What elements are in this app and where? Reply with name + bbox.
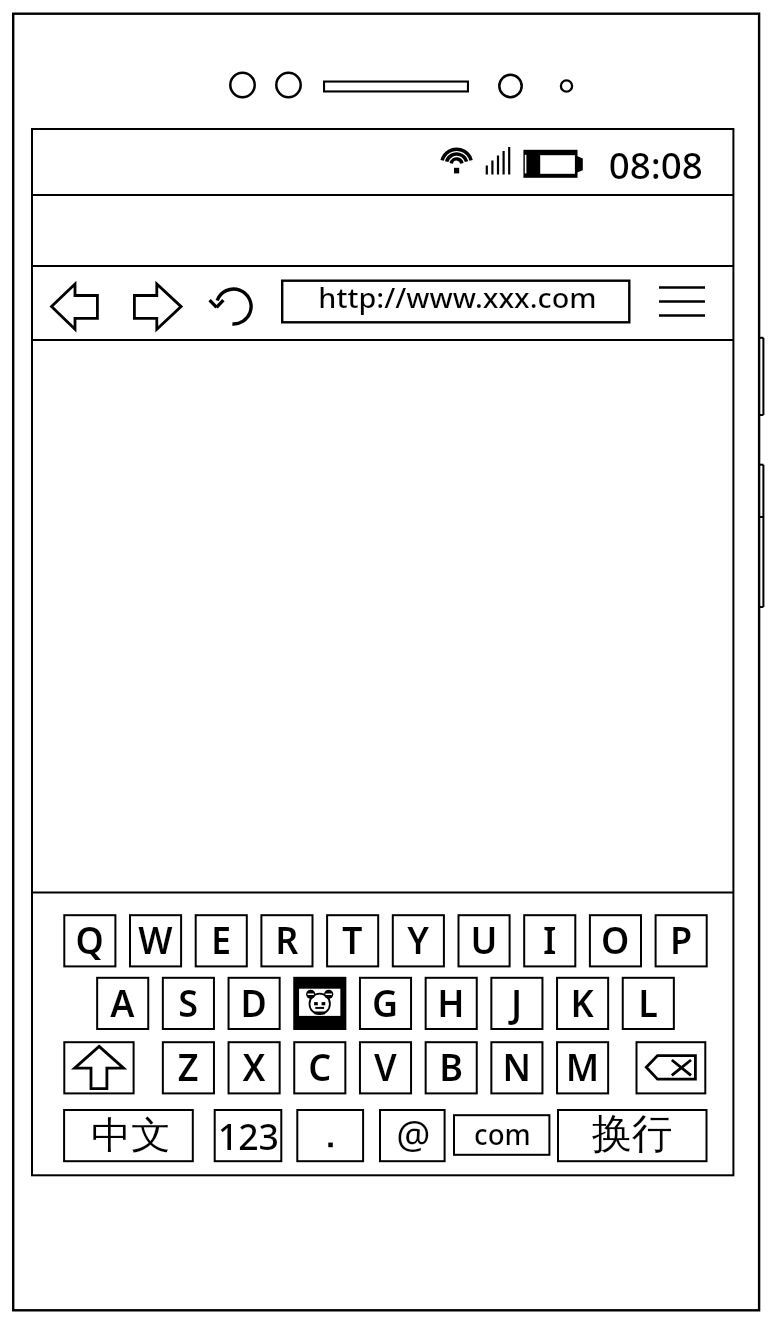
- button[interactable]: Forward: [124, 272, 196, 338]
- button[interactable]: I: [523, 914, 576, 967]
- button[interactable]: Address bar: [281, 280, 631, 324]
- button[interactable]: X: [228, 1041, 281, 1094]
- button[interactable]: T: [326, 914, 379, 967]
- button[interactable]: Q: [63, 914, 116, 967]
- button[interactable]: R: [260, 914, 313, 967]
- button[interactable]: Emoji: [293, 977, 346, 1030]
- button[interactable]: Shift: [63, 1041, 134, 1094]
- button[interactable]: 中文: [63, 1109, 194, 1162]
- button[interactable]: O: [589, 914, 642, 967]
- button[interactable]: A: [96, 977, 149, 1030]
- button[interactable]: Back: [40, 272, 112, 338]
- button[interactable]: D: [228, 977, 281, 1030]
- button[interactable]: V: [359, 1041, 412, 1094]
- button[interactable]: Y: [392, 914, 445, 967]
- button[interactable]: 123: [214, 1109, 283, 1162]
- button[interactable]: B: [425, 1041, 478, 1094]
- button[interactable]: com: [453, 1109, 550, 1162]
- button[interactable]: J: [490, 977, 543, 1030]
- button[interactable]: W: [129, 914, 182, 967]
- button[interactable]: 换行: [557, 1109, 708, 1162]
- button[interactable]: M: [556, 1041, 609, 1094]
- button[interactable]: Reload: [204, 272, 264, 338]
- button[interactable]: P: [655, 914, 708, 967]
- button[interactable]: Period: [296, 1109, 364, 1162]
- button[interactable]: S: [162, 977, 215, 1030]
- button[interactable]: G: [359, 977, 412, 1030]
- button[interactable]: Z: [162, 1041, 215, 1094]
- button[interactable]: U: [457, 914, 510, 967]
- button[interactable]: C: [293, 1041, 346, 1094]
- button[interactable]: K: [556, 977, 609, 1030]
- button[interactable]: N: [490, 1041, 543, 1094]
- button[interactable]: At sign: [379, 1109, 446, 1162]
- button[interactable]: Backspace: [636, 1041, 707, 1094]
- button[interactable]: Menu: [648, 272, 716, 332]
- button[interactable]: H: [425, 977, 478, 1030]
- button[interactable]: E: [195, 914, 248, 967]
- button[interactable]: L: [622, 977, 675, 1030]
